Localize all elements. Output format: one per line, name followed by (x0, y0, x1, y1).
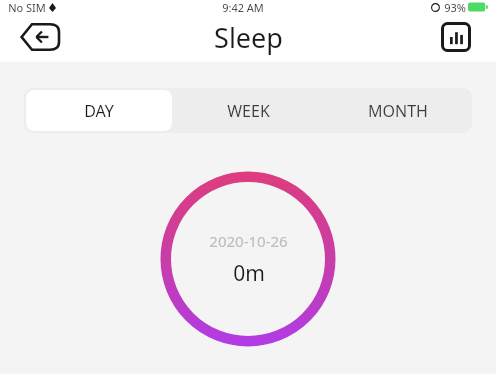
staticText: Sleep (214, 19, 283, 56)
button[interactable]: Back (16, 13, 64, 61)
staticText: WEEK (227, 100, 270, 122)
staticText: No SIM (8, 0, 46, 12)
staticText: MONTH (368, 100, 428, 122)
button[interactable]: DAY (26, 90, 172, 131)
staticText: 2020-10-26 (209, 231, 288, 251)
staticText: 93% (444, 0, 466, 12)
staticText: 0m (233, 259, 265, 288)
button[interactable]: Statistics (434, 15, 478, 59)
button[interactable]: MONTH (325, 90, 470, 131)
button[interactable]: WEEK (176, 90, 321, 131)
staticText: 9:42 AM (222, 0, 264, 12)
staticText: DAY (84, 100, 114, 122)
